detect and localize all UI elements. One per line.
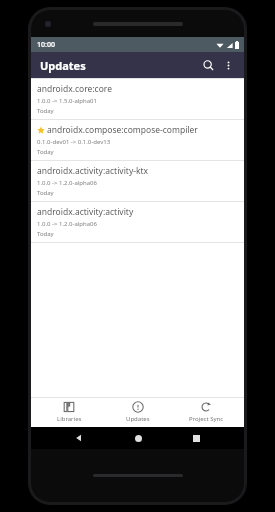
staticText: Today: [37, 230, 54, 238]
staticText: 10:00: [37, 40, 55, 50]
button[interactable]: Search: [198, 55, 218, 75]
staticText: Today: [37, 148, 54, 156]
staticText: 1.0.0 -> 1.2.0-alpha06: [37, 179, 97, 187]
button[interactable]: androidx.activity:activity-ktx: [31, 160, 244, 201]
button[interactable]: Recents: [185, 427, 207, 449]
button[interactable]: Libraries: [39, 398, 99, 426]
button[interactable]: Project Sync: [176, 398, 236, 426]
button[interactable]: Back: [68, 427, 90, 449]
staticText: Updates: [40, 58, 86, 73]
staticText: androidx.compose:compose-compiler: [47, 124, 198, 136]
button[interactable]: More options: [218, 55, 238, 75]
staticText: Today: [37, 189, 54, 197]
staticText: 0.1.0-dev01 -> 0.1.0-dev13: [37, 138, 111, 146]
button[interactable]: androidx.activity:activity: [31, 201, 244, 242]
button[interactable]: Home: [127, 427, 149, 449]
staticText: androidx.activity:activity-ktx: [37, 165, 149, 177]
staticText: Project Sync: [189, 415, 224, 423]
staticText: androidx.core:core: [37, 83, 112, 95]
button[interactable]: androidx.compose:compose-compiler: [31, 119, 244, 160]
button[interactable]: androidx.core:core: [31, 78, 244, 119]
button[interactable]: Updates: [108, 398, 168, 426]
staticText: Today: [37, 107, 54, 115]
staticText: 1.0.0 -> 1.2.0-alpha06: [37, 220, 97, 228]
staticText: androidx.activity:activity: [37, 206, 134, 218]
staticText: Updates: [126, 415, 150, 423]
staticText: Libraries: [57, 415, 82, 423]
staticText: 1.0.0 -> 1.5.0-alpha01: [37, 97, 97, 105]
